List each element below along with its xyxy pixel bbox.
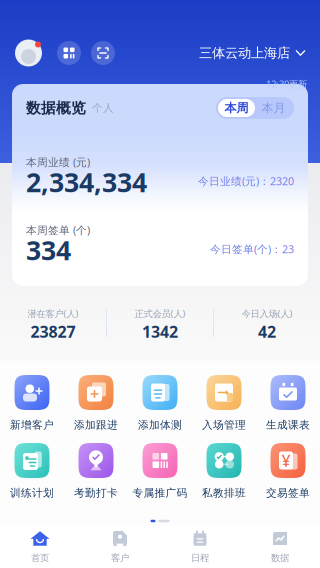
staticText: 本月 (261, 101, 285, 115)
button[interactable]: Scan (91, 41, 115, 65)
staticText: 首页 (31, 552, 49, 564)
staticText: 数据概览 (26, 99, 86, 117)
staticText: 专属推广码 (132, 486, 187, 499)
staticText: 私教排班 (202, 486, 246, 499)
staticText: 三体云动上海店 (199, 45, 290, 61)
staticText: 今日业绩(元)：2320 (198, 174, 294, 188)
staticText: 本周 (224, 101, 248, 115)
staticText: 添加跟进 (74, 418, 118, 431)
staticText: 日程 (191, 552, 209, 564)
button[interactable]: 首页 (0, 526, 80, 568)
button[interactable]: 数据 (240, 526, 320, 568)
staticText: 334 (26, 232, 71, 268)
button[interactable]: 日程 (160, 526, 240, 568)
button[interactable]: 考勤打卡 (64, 443, 128, 499)
button[interactable]: 三体云动上海店 (199, 45, 305, 61)
staticText: 42 (258, 321, 276, 342)
button[interactable]: 专属推广码 (128, 443, 192, 499)
staticText: 个人 (92, 101, 114, 114)
staticText: 本周签单 (个) (26, 223, 90, 237)
staticText: ¥ (281, 450, 290, 471)
button[interactable]: 客户 (80, 526, 160, 568)
staticText: 入场管理 (202, 418, 246, 431)
staticText: 今日入场(人) (241, 307, 292, 320)
button[interactable]: 本月 (255, 99, 292, 117)
button[interactable]: 训练计划 (0, 443, 64, 499)
staticText: 新增客户 (10, 418, 54, 431)
staticText: 考勤打卡 (74, 486, 118, 499)
staticText: 12:30更新 (266, 78, 307, 90)
staticText: 23827 (30, 321, 75, 342)
staticText: 数据 (271, 552, 289, 564)
button[interactable]: 生成课表 (256, 375, 320, 431)
button[interactable]: ¥ (256, 443, 320, 499)
staticText: 添加体测 (138, 418, 182, 431)
button[interactable]: QR code (57, 41, 81, 65)
staticText: 1342 (142, 321, 178, 342)
staticText: 正式会员(人) (134, 307, 185, 320)
staticText: 训练计划 (10, 486, 54, 499)
staticText: 本周业绩 (元) (26, 155, 90, 169)
button[interactable]: 添加体测 (128, 375, 192, 431)
staticText: 交易签单 (266, 486, 310, 499)
button[interactable]: 私教排班 (192, 443, 256, 499)
button[interactable]: 本周 (218, 99, 255, 117)
staticText: 今日签单(个)：23 (210, 242, 294, 256)
staticText: 客户 (111, 552, 129, 564)
button[interactable]: Profile (15, 39, 42, 66)
button[interactable]: 新增客户 (0, 375, 64, 431)
button[interactable]: 添加跟进 (64, 375, 128, 431)
staticText: 生成课表 (266, 418, 310, 431)
button[interactable]: 入场管理 (192, 375, 256, 431)
staticText: 潜在客户(人) (27, 307, 78, 320)
staticText: 2,334,334 (26, 164, 147, 200)
